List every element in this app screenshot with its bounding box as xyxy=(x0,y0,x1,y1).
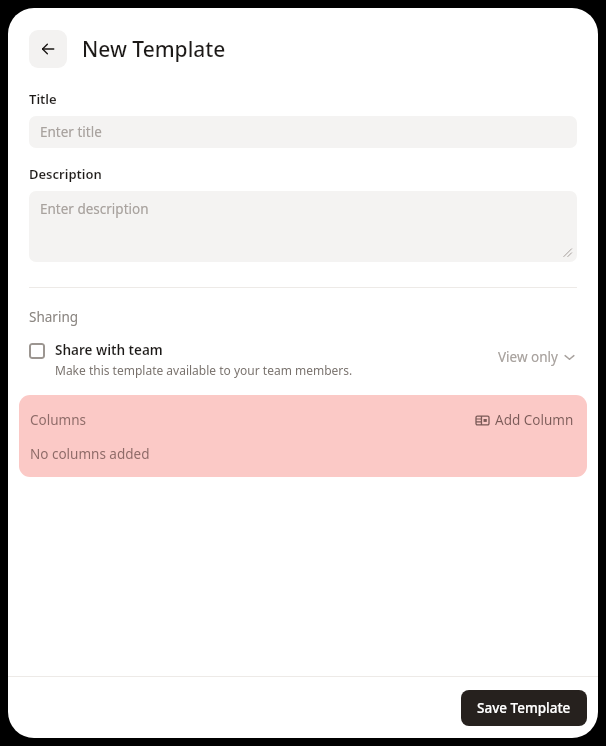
staticText: View only xyxy=(498,348,558,366)
staticText: Columns xyxy=(30,411,86,429)
button[interactable]: View only xyxy=(496,346,577,368)
button[interactable]: Share with team xyxy=(29,341,496,378)
staticText: Share with team xyxy=(55,341,163,359)
staticText: Enter description xyxy=(40,200,149,218)
staticText: Make this template available to your tea… xyxy=(55,362,353,378)
staticText: Title xyxy=(29,90,57,108)
staticText: Enter title xyxy=(40,123,102,141)
button[interactable]: Add Column xyxy=(474,409,576,431)
staticText: Description xyxy=(29,165,102,183)
staticText: Save Template xyxy=(477,699,571,717)
staticText: Add Column xyxy=(495,411,574,429)
staticText: Sharing xyxy=(29,308,79,326)
staticText: No columns added xyxy=(30,445,150,463)
button[interactable]: Save Template xyxy=(461,690,587,726)
button[interactable]: Enter title xyxy=(29,116,577,148)
button[interactable]: Enter description xyxy=(29,191,577,262)
staticText: New Template xyxy=(82,35,226,64)
button[interactable]: Back xyxy=(29,30,67,68)
